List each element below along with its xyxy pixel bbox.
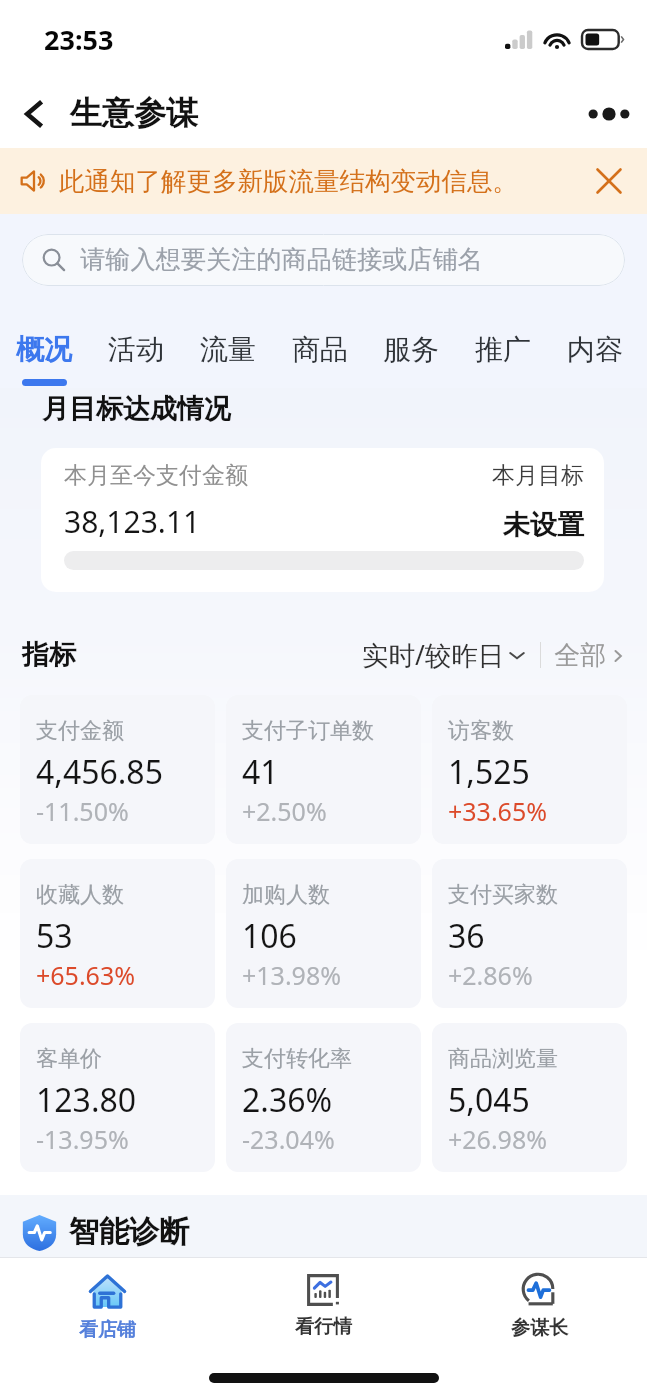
staticText: 智能诊断 [69, 1213, 189, 1251]
staticText: 请输入想要关注的商品链接或店铺名 [80, 244, 483, 276]
button[interactable]: 加购人数 [226, 859, 421, 1008]
staticText: 收藏人数 [36, 881, 124, 909]
staticText: 加购人数 [242, 881, 330, 909]
staticText: -13.95% [36, 1122, 129, 1156]
button[interactable]: Close [585, 157, 633, 205]
staticText: 未设置 [503, 508, 584, 542]
button[interactable]: 智能诊断 [0, 1195, 647, 1257]
staticText: 2.36% [242, 1078, 333, 1122]
staticText: 41 [242, 750, 279, 794]
staticText: 支付金额 [36, 717, 124, 745]
staticText: 38,123.11 [64, 501, 201, 542]
staticText: 参谋长 [511, 1316, 568, 1340]
staticText: 23:53 [44, 21, 114, 58]
staticText: +33.65% [448, 794, 547, 828]
staticText: 生意参谋 [70, 93, 198, 133]
button[interactable]: 活动 [101, 310, 171, 379]
staticText: 全部 [554, 639, 606, 672]
staticText: -23.04% [242, 1122, 335, 1156]
staticText: 月目标达成情况 [42, 392, 231, 426]
button[interactable]: 看店铺 [0, 1258, 215, 1342]
button[interactable]: 本月至今支付金额 [41, 448, 604, 592]
staticText: 客单价 [36, 1045, 102, 1073]
button[interactable]: 服务 [376, 310, 446, 379]
staticText: 123.80 [36, 1078, 137, 1122]
button[interactable]: 访客数 [432, 695, 627, 844]
staticText: 5,045 [448, 1078, 530, 1122]
staticText: -11.50% [36, 794, 129, 828]
staticText: 53 [36, 914, 73, 958]
staticText: 106 [242, 914, 297, 958]
staticText: 36 [448, 914, 485, 958]
staticText: 活动 [108, 332, 164, 367]
staticText: 4,456.85 [36, 750, 163, 794]
button[interactable]: 全部 [554, 639, 627, 672]
staticText: 1,525 [448, 750, 530, 794]
staticText: 看行情 [295, 1315, 352, 1339]
staticText: 指标 [22, 638, 76, 672]
staticText: 商品浏览量 [448, 1045, 558, 1073]
staticText: +2.50% [242, 794, 327, 828]
staticText: 支付买家数 [448, 881, 558, 909]
staticText: 支付子订单数 [242, 717, 374, 745]
button[interactable]: 支付子订单数 [226, 695, 421, 844]
button[interactable]: 商品浏览量 [432, 1023, 627, 1172]
button[interactable]: 支付金额 [20, 695, 215, 844]
staticText: +13.98% [242, 958, 341, 992]
staticText: 本月目标 [492, 461, 584, 490]
staticText: 推广 [475, 332, 531, 367]
staticText: 概况 [16, 332, 72, 367]
staticText: +65.63% [36, 958, 135, 992]
button[interactable]: 支付买家数 [432, 859, 627, 1008]
staticText: 服务 [383, 332, 439, 367]
button[interactable]: 流量 [193, 310, 263, 379]
staticText: 实时/较昨日 [362, 637, 505, 673]
button[interactable]: 概况 [9, 310, 79, 386]
staticText: 内容 [567, 332, 623, 367]
button[interactable]: 内容 [560, 310, 630, 379]
button[interactable]: 看行情 [215, 1258, 431, 1339]
staticText: +2.86% [448, 958, 533, 992]
staticText: 此通知了解更多新版流量结构变动信息。 [59, 165, 585, 197]
staticText: 访客数 [448, 717, 514, 745]
button[interactable]: 支付转化率 [226, 1023, 421, 1172]
staticText: 商品 [292, 332, 348, 367]
staticText: 本月至今支付金额 [64, 461, 248, 490]
button[interactable]: 客单价 [20, 1023, 215, 1172]
button[interactable]: 参谋长 [431, 1258, 647, 1340]
staticText: +26.98% [448, 1122, 547, 1156]
button[interactable]: 商品 [285, 310, 355, 379]
staticText: 支付转化率 [242, 1045, 352, 1073]
staticText: 流量 [200, 332, 256, 367]
button[interactable]: More options [579, 84, 639, 144]
button[interactable]: 收藏人数 [20, 859, 215, 1008]
button[interactable]: 请输入想要关注的商品链接或店铺名 [22, 234, 625, 286]
button[interactable]: Back [6, 86, 62, 142]
button[interactable]: 推广 [468, 310, 538, 379]
button[interactable]: 实时/较昨日 [362, 637, 527, 673]
staticText: 看店铺 [79, 1318, 136, 1342]
